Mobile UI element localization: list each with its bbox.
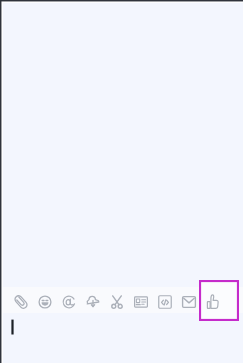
- button[interactable]: Cut: [105, 290, 129, 314]
- button[interactable]: Email: [177, 290, 201, 314]
- button[interactable]: Insert emoji: [33, 290, 57, 314]
- button[interactable]: Mention: [57, 290, 81, 314]
- button[interactable]: Like: [201, 290, 225, 314]
- button[interactable]: Attach file: [9, 290, 33, 314]
- button[interactable]: Upload file: [81, 290, 105, 314]
- button[interactable]: Insert contact card: [129, 290, 153, 314]
- button[interactable]: Insert code: [153, 290, 177, 314]
